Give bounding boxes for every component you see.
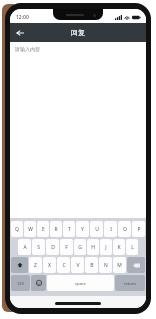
button[interactable]: X [43, 257, 56, 273]
button[interactable]: I [104, 221, 117, 237]
button[interactable]: O [118, 221, 131, 237]
staticText: L [131, 244, 134, 251]
staticText: X [48, 262, 51, 269]
staticText: A [23, 244, 27, 251]
button[interactable]: L [126, 239, 138, 255]
button[interactable]: Z [29, 257, 42, 273]
button[interactable]: Back [10, 23, 29, 42]
button[interactable]: space [47, 275, 114, 291]
button[interactable]: Emoji [31, 275, 46, 291]
staticText: F [65, 244, 68, 251]
staticText: W [28, 226, 33, 233]
staticText: U [95, 226, 99, 233]
button[interactable]: J [100, 239, 112, 255]
staticText: 请输入内容 [15, 46, 40, 52]
staticText: J [105, 244, 107, 251]
staticText: space [75, 281, 86, 286]
button[interactable]: H [87, 239, 99, 255]
staticText: E [42, 226, 45, 233]
button[interactable]: B [85, 257, 98, 273]
staticText: 回复 [71, 28, 85, 37]
button[interactable]: M [113, 257, 126, 273]
button[interactable]: U [90, 221, 103, 237]
button[interactable]: V [71, 257, 84, 273]
button[interactable]: F [60, 239, 73, 255]
staticText: B [90, 262, 94, 269]
button[interactable]: Y [76, 221, 89, 237]
staticText: G [78, 244, 82, 251]
button[interactable]: Q [11, 221, 23, 237]
button[interactable]: C [57, 257, 70, 273]
button[interactable]: R [50, 221, 62, 237]
button[interactable]: P [132, 221, 145, 237]
staticText: V [76, 262, 80, 269]
staticText: C [62, 262, 66, 269]
staticText: 12:00 [16, 14, 29, 21]
button[interactable]: Shift [11, 257, 28, 273]
staticText: R [54, 226, 58, 233]
button[interactable]: D [46, 239, 59, 255]
staticText: Z [34, 262, 37, 269]
button[interactable]: K [113, 239, 125, 255]
staticText: I [110, 226, 112, 233]
button[interactable]: 123 [11, 275, 30, 291]
staticText: Y [81, 226, 84, 233]
button[interactable]: T [63, 221, 75, 237]
staticText: P [137, 226, 141, 233]
staticText: return [124, 281, 136, 286]
staticText: O [123, 226, 127, 233]
staticText: 123 [17, 281, 24, 286]
staticText: H [91, 244, 95, 251]
button[interactable]: A [18, 239, 31, 255]
staticText: N [104, 262, 108, 269]
staticText: Q [15, 226, 19, 233]
button[interactable]: S [32, 239, 45, 255]
button[interactable]: G [74, 239, 86, 255]
button[interactable]: E [37, 221, 49, 237]
button[interactable]: Backspace [127, 257, 145, 273]
staticText: M [117, 262, 122, 269]
button[interactable]: W [24, 221, 36, 237]
staticText: K [117, 244, 121, 251]
staticText: T [68, 226, 71, 233]
staticText: S [37, 244, 40, 251]
button[interactable]: N [99, 257, 112, 273]
button[interactable]: return [115, 275, 145, 291]
staticText: D [51, 244, 55, 251]
